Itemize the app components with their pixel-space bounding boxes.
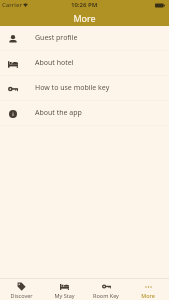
staticText: My Stay [54, 292, 75, 299]
staticText: Discover [10, 292, 33, 299]
staticText: More [73, 12, 96, 24]
button[interactable]: Room Key [85, 280, 127, 299]
staticText: Room Key [93, 292, 119, 299]
button[interactable]: Guest profile [0, 26, 169, 51]
staticText: How to use mobile key [35, 83, 110, 93]
staticText: About hotel [35, 58, 74, 68]
button[interactable]: Discover [0, 280, 43, 299]
staticText: More [141, 292, 155, 299]
button[interactable]: More [127, 280, 169, 299]
staticText: Carrier [2, 1, 22, 9]
button[interactable]: My Stay [43, 280, 85, 299]
staticText: Guest profile [35, 33, 78, 43]
button[interactable]: About hotel [0, 51, 169, 76]
button[interactable]: About the app [0, 101, 169, 126]
staticText: About the app [35, 108, 82, 118]
staticText: 10:26 PM [71, 1, 98, 9]
button[interactable]: How to use mobile key [0, 76, 169, 101]
